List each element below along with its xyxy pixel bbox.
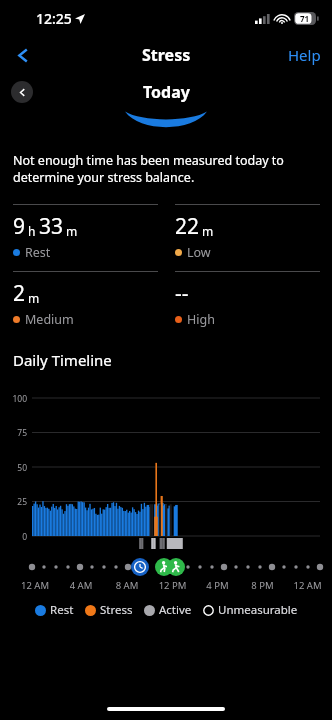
button[interactable]: Unmeasurable	[203, 602, 298, 618]
staticText: Stress	[100, 602, 133, 618]
staticText: High	[187, 311, 215, 328]
staticText: m	[66, 223, 78, 239]
staticText: 12 AM	[12, 579, 58, 592]
button[interactable]: 2	[13, 271, 158, 328]
staticText: Unmeasurable	[218, 602, 298, 618]
staticText: Today	[143, 81, 190, 103]
staticText: 12:25	[36, 9, 72, 28]
staticText: 33	[39, 212, 64, 241]
staticText: 4 AM	[58, 579, 104, 592]
button[interactable]: Previous day	[11, 81, 33, 103]
staticText: 75	[0, 427, 27, 439]
staticText: Rest	[25, 244, 51, 261]
staticText: 0	[0, 531, 27, 543]
button[interactable]: Rest	[35, 602, 74, 618]
staticText: h	[28, 223, 36, 239]
staticText: Low	[187, 244, 211, 261]
staticText: 71	[300, 13, 310, 24]
staticText: 50	[0, 462, 27, 474]
button[interactable]: 9	[13, 204, 158, 261]
staticText: m	[202, 223, 214, 239]
staticText: Medium	[25, 311, 74, 328]
staticText: 22	[175, 212, 200, 241]
staticText: Not enough time has been measured today …	[13, 152, 284, 186]
staticText: 8 PM	[240, 579, 285, 592]
button[interactable]: --	[175, 271, 320, 328]
staticText: 12 PM	[150, 579, 195, 592]
staticText: Rest	[50, 602, 74, 618]
button[interactable]: Help	[288, 45, 321, 65]
staticText: Help	[288, 45, 321, 65]
staticText: Stress	[142, 44, 191, 66]
staticText: m	[28, 290, 40, 306]
staticText: Daily Timeline	[13, 350, 112, 370]
button[interactable]: Active	[144, 602, 192, 618]
staticText: 4 PM	[195, 579, 240, 592]
staticText: 2	[13, 279, 26, 308]
staticText: 100	[0, 393, 27, 405]
button[interactable]: 22	[175, 204, 320, 261]
staticText: 12 AM	[285, 579, 330, 592]
staticText: --	[175, 279, 189, 308]
button[interactable]: Stress	[85, 602, 133, 618]
button[interactable]: Back	[6, 38, 40, 72]
staticText: Active	[159, 602, 192, 618]
staticText: 9	[13, 212, 26, 241]
staticText: 25	[0, 496, 27, 508]
staticText: 8 AM	[104, 579, 150, 592]
